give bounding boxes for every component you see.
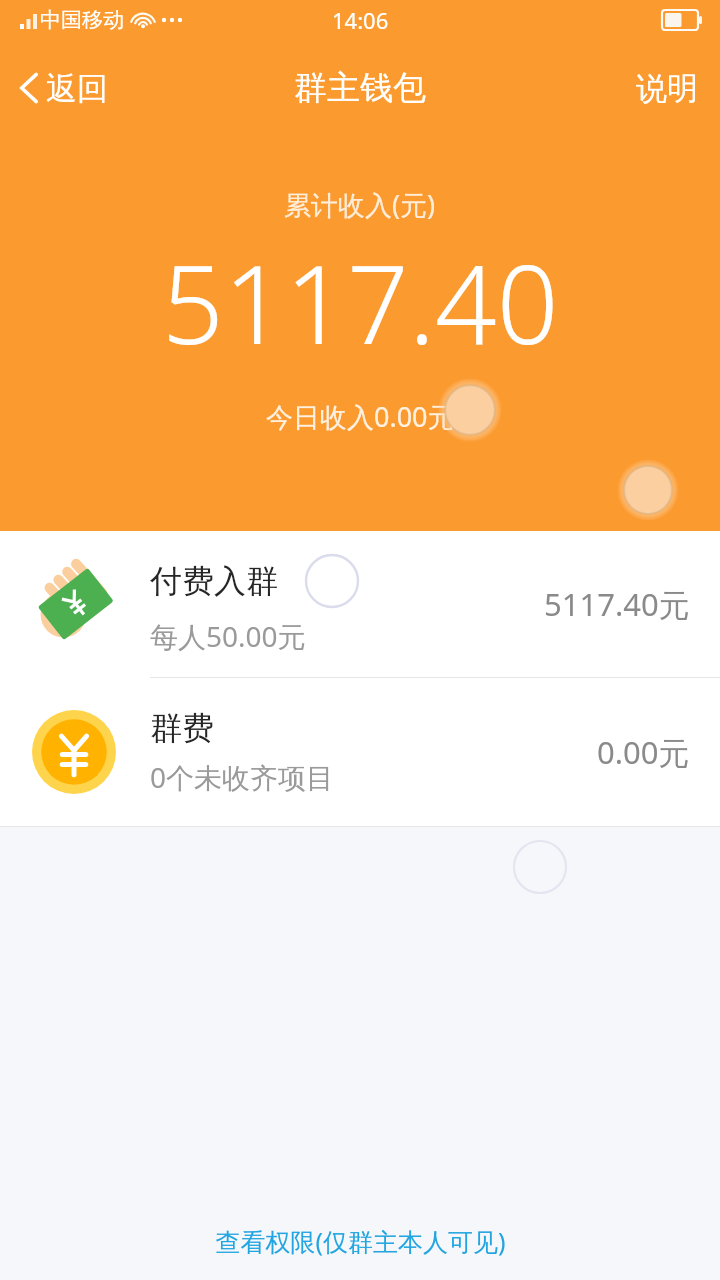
staticText: 累计收入(元) xyxy=(284,186,436,223)
staticText: 群费 xyxy=(150,708,214,748)
button[interactable]: 说明 xyxy=(614,59,720,118)
staticText: 中国移动 xyxy=(40,7,124,33)
button[interactable]: 群费 xyxy=(0,678,720,826)
staticText: 今日收入0.00元 xyxy=(266,398,455,435)
staticText: 5117.40元 xyxy=(544,583,690,625)
button[interactable]: 查看权限(仅群主本人可见) xyxy=(0,1216,720,1266)
staticText: 14:06 xyxy=(332,5,389,35)
button[interactable]: 付费入群 xyxy=(0,531,720,677)
staticText: 返回 xyxy=(46,69,108,108)
button[interactable]: 返回 xyxy=(0,60,124,116)
staticText: 每人50.00元 xyxy=(150,617,306,655)
staticText: 5117.40 xyxy=(162,229,559,376)
staticText: 0个未收齐项目 xyxy=(150,758,335,796)
staticText: 说明 xyxy=(636,69,698,108)
staticText: 查看权限(仅群主本人可见) xyxy=(215,1224,506,1258)
staticText: 群主钱包 xyxy=(294,67,426,109)
staticText: 0.00元 xyxy=(597,731,690,773)
staticText: 付费入群 xyxy=(150,561,278,601)
